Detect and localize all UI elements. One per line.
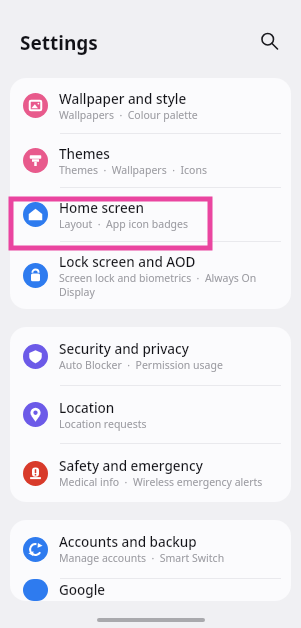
staticText: Themes: [59, 145, 110, 163]
staticText: Accounts and backup: [59, 533, 197, 551]
button[interactable]: Location: [10, 386, 291, 443]
staticText: Location requests: [59, 417, 147, 431]
button[interactable]: Wallpaper and style: [10, 78, 291, 133]
staticText: Wallpapers · Colour palette: [59, 108, 198, 122]
button[interactable]: Security and privacy: [10, 327, 291, 385]
staticText: Themes · Wallpapers · Icons: [59, 163, 207, 177]
button[interactable]: Accounts and backup: [10, 520, 291, 578]
staticText: Security and privacy: [59, 340, 189, 358]
staticText: Lock screen and AOD: [59, 253, 196, 271]
staticText: Auto Blocker · Permission usage: [59, 358, 223, 372]
staticText: Google: [59, 581, 106, 599]
staticText: Medical info · Wireless emergency alerts: [59, 475, 263, 489]
staticText: Home screen: [59, 199, 144, 217]
button[interactable]: Google: [10, 579, 291, 601]
button[interactable]: Search: [252, 24, 286, 58]
staticText: Location: [59, 399, 115, 417]
staticText: Wallpaper and style: [59, 90, 187, 108]
button[interactable]: Themes: [10, 134, 291, 187]
staticText: Manage accounts · Smart Switch: [59, 551, 225, 565]
button[interactable]: Safety and emergency: [10, 444, 291, 502]
staticText: Safety and emergency: [59, 457, 203, 475]
button[interactable]: Lock screen and AOD: [10, 242, 291, 309]
button[interactable]: Home screen: [10, 188, 291, 241]
staticText: Settings: [20, 30, 98, 56]
staticText: Layout · App icon badges: [59, 217, 189, 231]
staticText: Screen lock and biometrics · Always On D…: [59, 271, 279, 299]
